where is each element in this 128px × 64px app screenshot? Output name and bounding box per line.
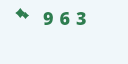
staticText: 963 — [43, 6, 93, 31]
